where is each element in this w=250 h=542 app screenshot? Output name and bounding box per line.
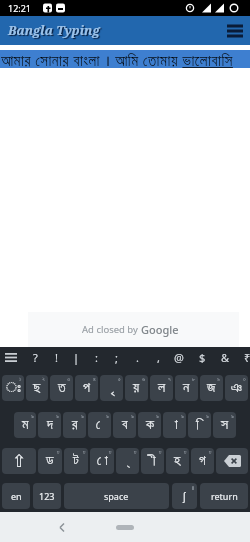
button[interactable] [216,448,248,474]
button[interactable]: ; [110,349,122,365]
button[interactable]: . [131,349,143,365]
button[interactable]: ন [175,375,198,401]
button[interactable]: জ [200,375,223,401]
button[interactable]: ো [90,448,114,474]
button[interactable] [5,353,17,362]
staticText: $ [199,350,206,365]
staticText: ্ [126,454,130,468]
staticText: space [104,490,129,502]
staticText: য় [133,381,140,395]
button[interactable]: $ [196,349,208,365]
button[interactable]: , [152,349,164,365]
button[interactable]: ঃ [2,375,24,401]
staticText: ঌ [156,413,159,419]
button[interactable]: ক [138,412,161,438]
staticText: ঢ [109,449,112,455]
staticText: ঌ [131,413,134,419]
staticText: ঃ [6,381,21,395]
button[interactable] [116,525,134,530]
staticText: en [11,490,22,502]
staticText: ল [158,381,166,395]
staticText: ম [22,418,29,432]
staticText: ত [58,381,66,395]
button[interactable]: র [63,412,86,438]
staticText: ঢ [134,449,137,455]
staticText: ছ [33,381,41,395]
button[interactable]: ₹ [241,349,250,365]
button[interactable]: দ [38,412,61,438]
button[interactable]: ব [113,412,136,438]
staticText: Google [141,322,179,337]
staticText: ৩ [67,376,71,382]
button[interactable]: ি [188,412,211,438]
button[interactable]: ট [64,448,88,474]
staticText: ঢ [209,449,212,455]
button[interactable]: Ad closed by [28,312,239,347]
button[interactable]: হ [166,448,189,474]
button[interactable]: ? [29,349,41,365]
staticText: ০ [243,376,246,382]
staticText: ২ [42,376,46,382]
staticText: ? [33,350,38,365]
button[interactable]: ে [88,412,111,438]
staticText: ৪ [93,376,96,382]
staticText: : [95,350,98,365]
staticText: ৃ [110,381,114,395]
staticText: ₹ [244,350,250,365]
button[interactable]: ী [141,448,164,474]
button[interactable] [59,523,65,532]
button[interactable]: ড [38,448,62,474]
button[interactable]: প [75,375,98,401]
staticText: দ [47,418,53,432]
staticText: 12:21 [8,2,32,14]
staticText: ʃ [183,489,186,503]
staticText: ঌ [181,413,184,419]
button[interactable]: া [163,412,186,438]
staticText: . [136,350,139,365]
button[interactable]: return [200,483,248,509]
button[interactable]: ছ [26,375,48,401]
button[interactable]: য় [125,375,148,401]
button[interactable]: ʃ [172,483,197,509]
button[interactable]: ল [150,375,173,401]
staticText: ঞ [231,381,242,395]
button[interactable]: ্ [116,448,139,474]
button[interactable]: 123 [33,483,61,509]
button[interactable]: ৃ [100,375,123,401]
staticText: ে [96,418,104,432]
button[interactable]: & [219,349,231,365]
button[interactable]: ত [50,375,73,401]
button[interactable] [227,24,243,38]
staticText: ন [183,381,190,395]
staticText: ি [196,418,203,432]
staticText: ঌ [206,413,209,419]
button[interactable]: ঞ [225,375,248,401]
button[interactable]: ! [50,349,62,365]
staticText: & [221,350,230,365]
button[interactable]: : [90,349,102,365]
staticText: ; [115,350,118,365]
staticText: ব [122,418,128,432]
staticText: Bangla Typing [8,22,100,39]
staticText: ক [146,418,154,432]
button[interactable]: স [213,412,236,438]
button[interactable]: space [64,483,169,509]
button[interactable]: গ [191,448,214,474]
staticText: ঌ [31,413,34,419]
staticText: ড [46,454,54,468]
button[interactable]: @ [173,349,185,365]
staticText: ঢ [184,449,187,455]
button[interactable]: ম [14,412,36,438]
staticText: return [211,490,238,502]
staticText: র [72,418,78,432]
button[interactable]: en [2,483,30,509]
staticText: ৯ [217,376,221,382]
staticText: ঌ [56,413,59,419]
staticText: Ad closed by [82,323,141,336]
button[interactable]: ⇧ [2,448,36,474]
staticText: ঌ [231,413,234,419]
staticText: ো [97,454,108,468]
button[interactable]: | [70,349,82,365]
staticText: গ [199,454,206,468]
staticText: ৭ [168,376,171,382]
